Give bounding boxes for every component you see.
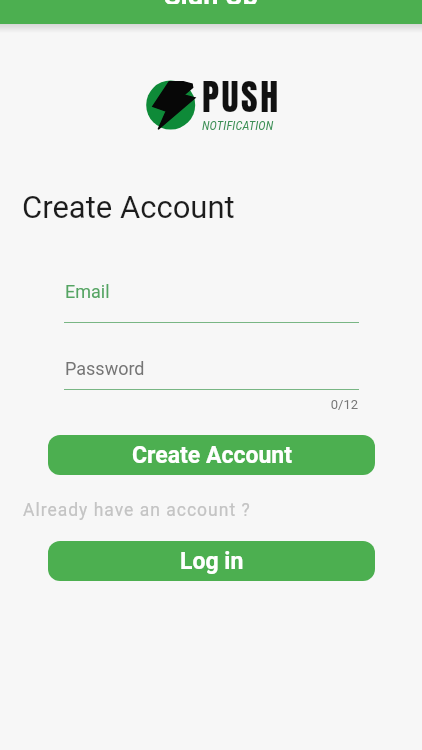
staticText: Password	[65, 358, 145, 379]
staticText: PUSH	[202, 70, 281, 124]
staticText: 0/12	[0, 397, 358, 412]
button[interactable]: Log in	[48, 541, 375, 581]
staticText: Create Account	[22, 189, 235, 225]
staticText: Sign Up	[164, 0, 258, 4]
staticText: Log in	[180, 548, 244, 575]
staticText: NOTIFICATION	[202, 118, 274, 133]
button[interactable]: Sign Up	[0, 0, 422, 24]
staticText: Already have an account ?	[23, 500, 251, 521]
staticText: Create Account	[132, 442, 292, 469]
staticText: Email	[65, 281, 110, 302]
button[interactable]: Create Account	[48, 435, 375, 475]
